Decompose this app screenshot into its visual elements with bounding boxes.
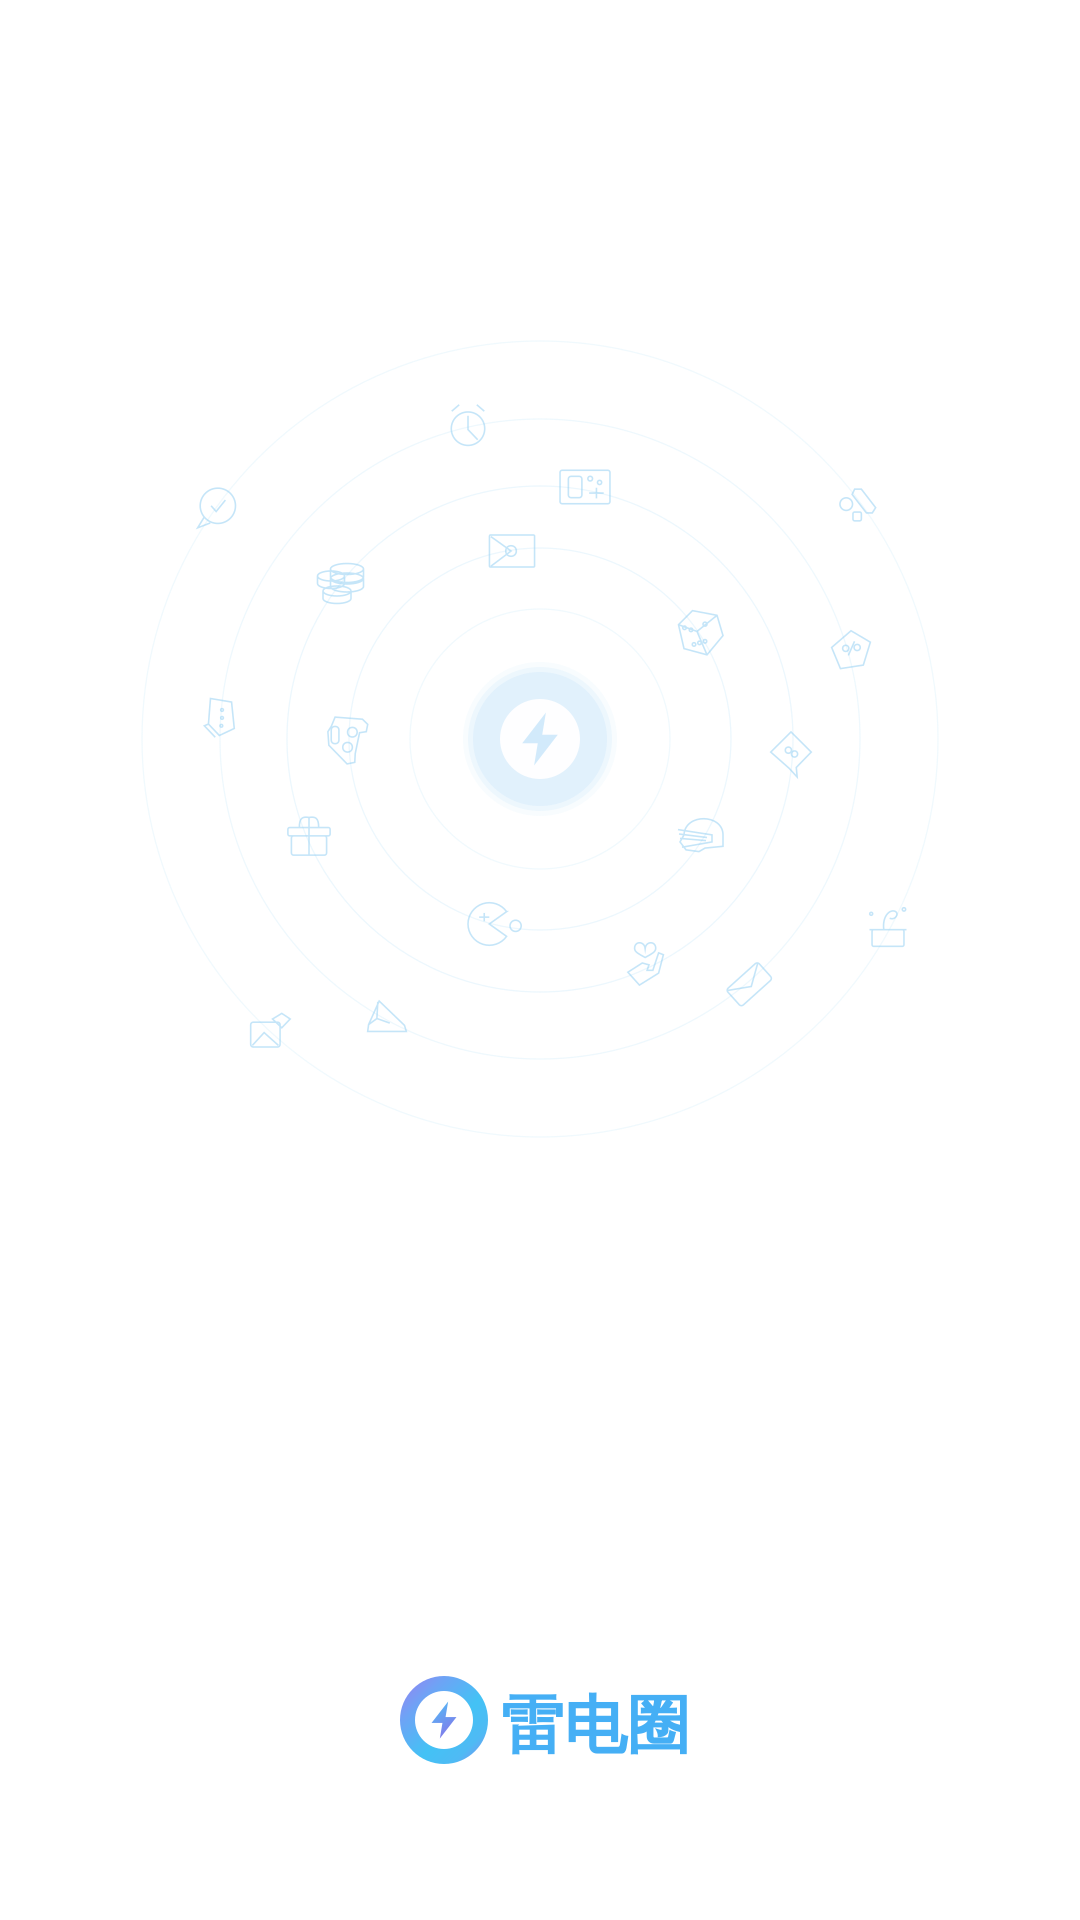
button[interactable]: 雷电圈 [400, 1676, 690, 1764]
staticText: 雷电圈 [501, 1687, 690, 1764]
